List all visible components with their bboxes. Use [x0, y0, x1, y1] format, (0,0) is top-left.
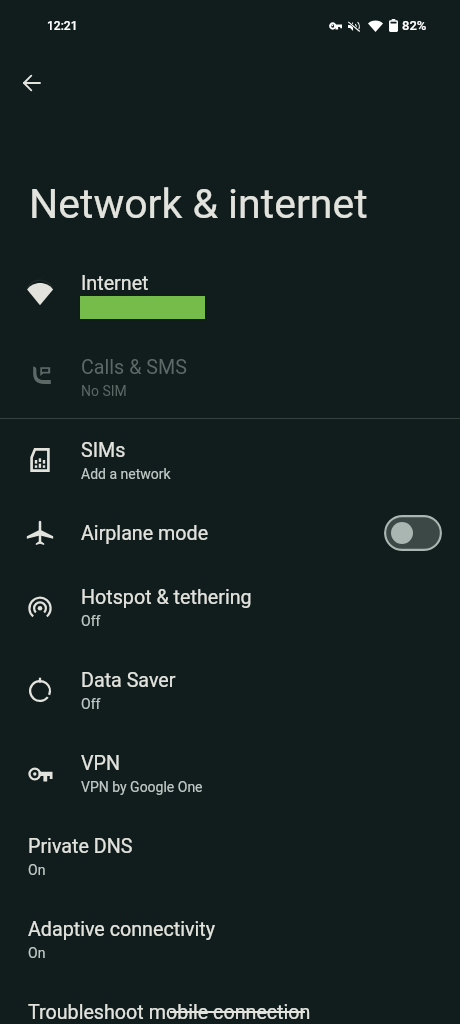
staticText: 82% — [402, 18, 427, 33]
staticText: Off — [81, 696, 101, 712]
staticText: Off — [81, 613, 101, 629]
button[interactable]: Airplane mode — [0, 501, 460, 565]
button[interactable]: Calls & SMS — [0, 335, 460, 418]
staticText: 12:21 — [47, 19, 78, 33]
staticText: Data Saver — [81, 669, 176, 692]
button[interactable]: VPN — [0, 731, 460, 814]
button[interactable]: Data Saver — [0, 648, 460, 731]
staticText: Internet — [81, 272, 149, 295]
staticText: Troubleshoot mobile connection — [28, 1001, 311, 1024]
button[interactable]: Adaptive connectivity — [0, 897, 460, 980]
staticText: On — [28, 862, 46, 878]
staticText: Add a network — [81, 466, 171, 482]
button[interactable]: Hotspot & tethering — [0, 565, 460, 648]
button[interactable]: Private DNS — [0, 814, 460, 897]
staticText: SIMs — [81, 439, 126, 462]
staticText: Private DNS — [28, 835, 133, 858]
button[interactable]: Airplane mode — [384, 515, 442, 551]
staticText: VPN — [81, 752, 121, 775]
staticText: Adaptive connectivity — [28, 918, 216, 941]
button[interactable]: SIMs — [0, 418, 460, 501]
staticText: Network & internet — [29, 180, 368, 228]
staticText: Airplane mode — [81, 522, 209, 545]
button[interactable]: Internet — [0, 252, 460, 335]
staticText: Hotspot & tethering — [81, 586, 252, 609]
staticText: VPN by Google One — [81, 779, 203, 795]
button[interactable]: Navigate up — [12, 63, 52, 103]
staticText: Calls & SMS — [81, 356, 187, 379]
staticText: No SIM — [81, 383, 127, 399]
button[interactable]: Troubleshoot mobile connection — [0, 980, 460, 1024]
staticText: On — [28, 945, 46, 961]
